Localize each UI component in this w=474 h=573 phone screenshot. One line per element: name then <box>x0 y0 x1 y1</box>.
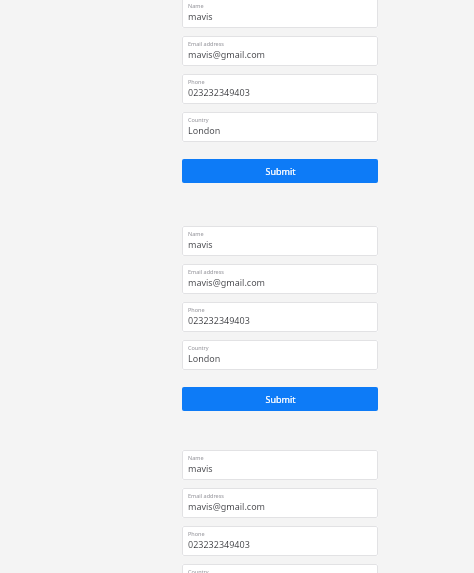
staticText: Name <box>188 230 204 237</box>
staticText: mavis <box>188 462 213 474</box>
button[interactable]: Email address <box>182 36 378 66</box>
staticText: Country <box>188 568 209 573</box>
staticText: 023232349403 <box>188 538 250 550</box>
button[interactable]: Name <box>182 0 378 28</box>
button[interactable]: Email address <box>182 488 378 518</box>
staticText: Phone <box>188 306 205 313</box>
staticText: London <box>188 352 221 364</box>
button[interactable]: Country <box>182 340 378 370</box>
button[interactable]: Phone <box>182 526 378 556</box>
staticText: mavis <box>188 10 213 22</box>
button[interactable]: Country <box>182 112 378 142</box>
staticText: Phone <box>188 78 205 85</box>
staticText: Email address <box>188 40 224 47</box>
button[interactable]: Phone <box>182 74 378 104</box>
button[interactable]: Phone <box>182 302 378 332</box>
staticText: Phone <box>188 530 205 537</box>
button[interactable]: Country <box>182 564 378 573</box>
button[interactable]: Email address <box>182 264 378 294</box>
staticText: Name <box>188 2 204 9</box>
button[interactable]: Submit <box>182 387 378 411</box>
staticText: Submit <box>265 165 296 177</box>
staticText: London <box>188 124 221 136</box>
staticText: 023232349403 <box>188 314 250 326</box>
staticText: Submit <box>265 393 296 405</box>
button[interactable]: Name <box>182 450 378 480</box>
staticText: mavis@gmail.com <box>188 500 265 512</box>
staticText: Country <box>188 344 209 351</box>
staticText: Name <box>188 454 204 461</box>
staticText: Email address <box>188 492 224 499</box>
staticText: mavis@gmail.com <box>188 276 265 288</box>
staticText: 023232349403 <box>188 86 250 98</box>
staticText: Country <box>188 116 209 123</box>
staticText: Email address <box>188 268 224 275</box>
staticText: mavis@gmail.com <box>188 48 265 60</box>
button[interactable]: Name <box>182 226 378 256</box>
staticText: mavis <box>188 238 213 250</box>
button[interactable]: Submit <box>182 159 378 183</box>
